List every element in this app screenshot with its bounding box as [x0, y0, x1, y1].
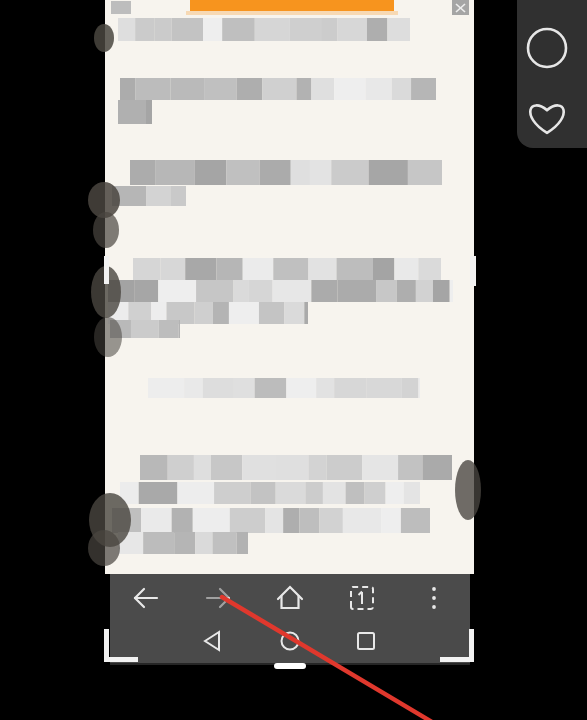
button[interactable]: Favorite — [527, 95, 569, 137]
button[interactable]: Back — [124, 576, 168, 618]
button[interactable]: System back — [191, 622, 235, 662]
button[interactable]: System home — [268, 622, 312, 662]
button[interactable]: Record — [527, 27, 569, 69]
button[interactable]: Web page content — [105, 0, 474, 574]
button[interactable]: Tabs, 1 open — [340, 576, 384, 618]
button[interactable]: Home — [268, 576, 312, 618]
button[interactable]: More options — [412, 576, 456, 618]
button[interactable]: Recent apps — [344, 622, 388, 662]
button[interactable]: Forward — [196, 576, 240, 618]
